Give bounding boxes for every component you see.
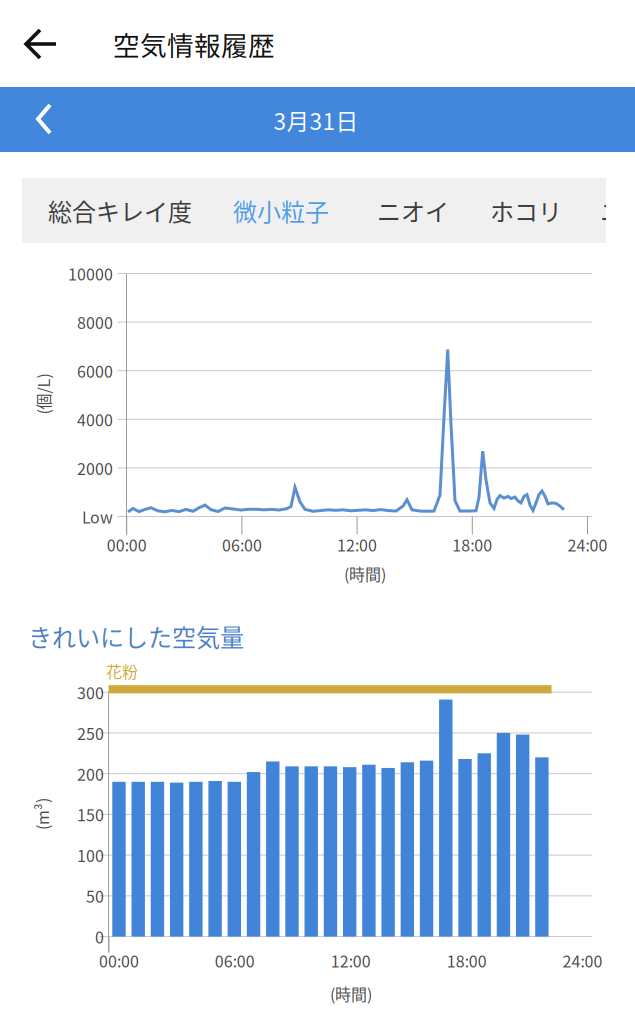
staticText: 00:00 bbox=[107, 533, 147, 556]
staticText: (m³) bbox=[26, 802, 58, 826]
staticText: 6000 bbox=[77, 359, 113, 382]
staticText: 06:00 bbox=[215, 949, 255, 972]
staticText: ホコリ bbox=[490, 193, 562, 228]
staticText: きれいにした空気量 bbox=[28, 619, 244, 653]
staticText: 150 bbox=[77, 803, 104, 826]
staticText: 06:00 bbox=[222, 533, 262, 556]
staticText: 2000 bbox=[77, 456, 113, 479]
staticText: ニオイ bbox=[600, 193, 635, 228]
button[interactable]: Previous day bbox=[6, 87, 80, 152]
staticText: 100 bbox=[77, 843, 104, 867]
staticText: (時間) bbox=[330, 982, 372, 1005]
staticText: 空気情報履歴 bbox=[113, 25, 275, 63]
button[interactable]: ニオイ bbox=[587, 178, 635, 243]
staticText: Low bbox=[82, 505, 113, 528]
button[interactable]: 微小粒子 bbox=[220, 178, 342, 243]
staticText: 18:00 bbox=[447, 949, 487, 972]
staticText: 24:00 bbox=[567, 533, 607, 556]
staticText: 12:00 bbox=[337, 533, 377, 556]
staticText: 300 bbox=[77, 681, 104, 704]
button[interactable]: Back bbox=[0, 0, 84, 87]
staticText: (個/L) bbox=[22, 382, 63, 406]
staticText: (時間) bbox=[344, 562, 386, 585]
staticText: 花粉 bbox=[106, 659, 138, 683]
staticText: 微小粒子 bbox=[233, 193, 329, 228]
button[interactable]: ニオイ bbox=[364, 178, 462, 243]
staticText: 12:00 bbox=[331, 949, 371, 972]
staticText: 10000 bbox=[68, 262, 113, 285]
staticText: ニオイ bbox=[377, 193, 449, 228]
staticText: 250 bbox=[77, 721, 104, 744]
staticText: 50 bbox=[86, 884, 104, 907]
staticText: 総合キレイ度 bbox=[48, 193, 192, 228]
staticText: 00:00 bbox=[99, 949, 139, 972]
staticText: 200 bbox=[77, 762, 104, 785]
staticText: 3月31日 bbox=[273, 104, 358, 136]
staticText: 4000 bbox=[77, 408, 113, 431]
button[interactable]: ホコリ bbox=[477, 178, 575, 243]
staticText: 0 bbox=[95, 925, 104, 948]
button[interactable]: 総合キレイ度 bbox=[35, 178, 205, 243]
staticText: 8000 bbox=[77, 310, 113, 334]
staticText: 18:00 bbox=[452, 533, 492, 556]
staticText: 24:00 bbox=[563, 949, 603, 972]
